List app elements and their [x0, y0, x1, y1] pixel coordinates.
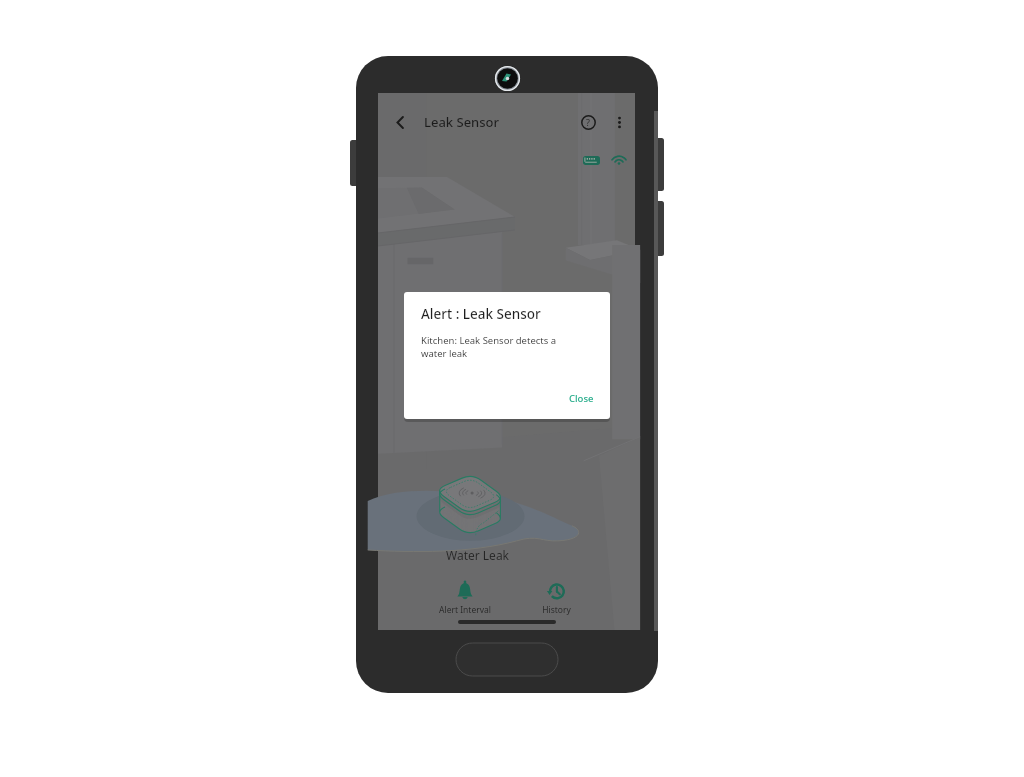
button[interactable]: More options: [606, 109, 632, 135]
staticText: Kitchen: Leak Sensor detects a water lea…: [421, 334, 577, 360]
staticText: Water Leak: [446, 547, 510, 563]
button[interactable]: Alert Interval: [431, 581, 499, 616]
button[interactable]: Close: [565, 389, 598, 408]
staticText: History: [542, 604, 571, 616]
staticText: ?: [586, 116, 590, 128]
staticText: Leak Sensor: [424, 113, 500, 131]
button[interactable]: Back: [386, 108, 414, 136]
button[interactable]: Help: [574, 108, 602, 136]
staticText: Alert : Leak Sensor: [421, 305, 541, 323]
staticText: Alert Interval: [439, 604, 491, 616]
button[interactable]: History: [522, 581, 590, 616]
staticText: Close: [569, 392, 594, 405]
